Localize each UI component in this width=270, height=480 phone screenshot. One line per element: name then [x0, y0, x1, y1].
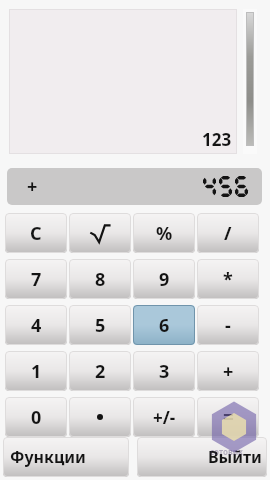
staticText: 7 [31, 267, 42, 292]
button[interactable]: = [197, 397, 259, 437]
button[interactable]: - [197, 305, 259, 345]
button[interactable]: 5 [69, 305, 131, 345]
button[interactable]: 3 [133, 351, 195, 391]
button[interactable]: Функции [3, 437, 129, 477]
button[interactable]: Square root [69, 213, 131, 253]
button[interactable]: + [7, 168, 262, 205]
staticText: 6 [159, 313, 170, 338]
button[interactable]: Выйти [137, 437, 267, 477]
staticText: 2 [95, 359, 106, 384]
button[interactable]: / [197, 213, 259, 253]
button[interactable]: Decimal point [69, 397, 131, 437]
button[interactable]: + [197, 351, 259, 391]
staticText: 0 [31, 405, 42, 430]
staticText: / [224, 221, 232, 246]
staticText: 5 [95, 313, 106, 338]
staticText: * [223, 267, 233, 292]
button[interactable]: +/- [133, 397, 195, 437]
button[interactable]: 7 [5, 259, 67, 299]
button[interactable]: 2 [69, 351, 131, 391]
staticText: Выйти [208, 446, 262, 468]
staticText: 1 [31, 359, 42, 384]
button[interactable]: 1 [5, 351, 67, 391]
staticText: +/- [153, 406, 176, 429]
staticText: сотовик [210, 446, 244, 457]
staticText: 8 [95, 267, 106, 292]
staticText: 3 [159, 359, 170, 384]
staticText: + [27, 174, 38, 199]
button[interactable]: % [133, 213, 195, 253]
staticText: = [223, 404, 234, 430]
button[interactable]: 0 [5, 397, 67, 437]
staticText: 9 [159, 267, 170, 292]
staticText: 123 [202, 128, 232, 151]
staticText: 4 [31, 313, 42, 338]
button[interactable]: * [197, 259, 259, 299]
button[interactable]: 4 [5, 305, 67, 345]
staticText: C [30, 221, 42, 246]
button[interactable]: C [5, 213, 67, 253]
staticText: Функции [10, 446, 86, 468]
staticText: % [156, 221, 173, 246]
button[interactable]: 9 [133, 259, 195, 299]
staticText: + [223, 359, 234, 384]
button[interactable]: 6 [133, 305, 195, 345]
staticText: - [225, 313, 231, 338]
button[interactable]: 8 [69, 259, 131, 299]
